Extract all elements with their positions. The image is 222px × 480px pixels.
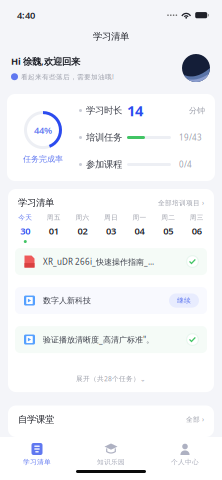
staticText: 学习清单 bbox=[18, 197, 54, 208]
button[interactable]: 周六 bbox=[68, 213, 97, 243]
staticText: Hi 徐魏,欢迎回来 bbox=[11, 55, 80, 67]
staticText: 05 bbox=[163, 225, 173, 237]
staticText: 分钟 bbox=[189, 106, 205, 115]
staticText: 自学课堂 bbox=[18, 413, 54, 425]
staticText: 14 bbox=[127, 101, 143, 120]
staticText: 周日 bbox=[104, 213, 118, 222]
button[interactable]: 周三 bbox=[182, 213, 211, 243]
staticText: 知识乐园 bbox=[97, 458, 125, 466]
staticText: 周二 bbox=[161, 213, 175, 222]
button[interactable]: 周一 bbox=[125, 213, 154, 243]
button[interactable]: 展开（共28个任务）⌄ bbox=[76, 365, 146, 392]
staticText: 全部培训项目 › bbox=[158, 198, 204, 207]
button[interactable]: 今天 bbox=[11, 213, 40, 243]
button[interactable]: 学习清单 bbox=[0, 443, 74, 466]
staticText: 参加课程 bbox=[86, 159, 122, 170]
staticText: 03 bbox=[106, 225, 116, 237]
staticText: 看起来有些落后，需要加油哦! bbox=[21, 72, 114, 81]
staticText: 学习清单 bbox=[93, 31, 129, 42]
staticText: 验证播放清晰度_高清广标准"。 bbox=[43, 334, 154, 345]
staticText: 4:40 bbox=[17, 9, 35, 21]
button[interactable]: 全部培训项目 › bbox=[158, 198, 204, 207]
button[interactable]: 周日 bbox=[97, 213, 125, 243]
button[interactable]: 全部 › bbox=[186, 415, 204, 424]
staticText: 30 bbox=[20, 225, 30, 237]
staticText: 01 bbox=[49, 225, 59, 237]
staticText: 任务完成率 bbox=[23, 154, 63, 164]
staticText: 04 bbox=[135, 225, 145, 237]
staticText: 周一 bbox=[133, 213, 147, 222]
staticText: 周六 bbox=[75, 213, 89, 222]
staticText: 学习时长 bbox=[86, 105, 122, 116]
staticText: 02 bbox=[77, 225, 87, 237]
staticText: 继续 bbox=[177, 296, 191, 305]
staticText: 44% bbox=[34, 124, 52, 136]
button[interactable]: 个人中心 bbox=[148, 443, 222, 466]
button[interactable]: 周五 bbox=[40, 213, 68, 243]
staticText: 培训任务 bbox=[86, 132, 122, 143]
staticText: 0/4 bbox=[179, 159, 192, 170]
staticText: 个人中心 bbox=[171, 458, 199, 466]
staticText: 学习清单 bbox=[23, 458, 51, 466]
staticText: 周三 bbox=[190, 213, 204, 222]
button[interactable]: 知识乐园 bbox=[74, 443, 148, 466]
staticText: 06 bbox=[192, 225, 202, 237]
staticText: XR_uDR 266i_快速操作指南_... bbox=[43, 256, 154, 267]
button[interactable]: XR_uDR 266i_快速操作指南_... bbox=[8, 248, 214, 287]
staticText: 全部 › bbox=[186, 415, 204, 424]
staticText: 今天 bbox=[18, 213, 32, 222]
staticText: 数字人新科技 bbox=[43, 296, 91, 305]
staticText: 19/43 bbox=[179, 132, 202, 143]
button[interactable]: 验证播放清晰度_高清广标准"。 bbox=[8, 326, 214, 365]
staticText: 展开（共28个任务）⌄ bbox=[76, 374, 146, 383]
staticText: 周五 bbox=[47, 213, 61, 222]
button[interactable]: 周二 bbox=[154, 213, 182, 243]
button[interactable]: 数字人新科技 bbox=[8, 287, 214, 326]
